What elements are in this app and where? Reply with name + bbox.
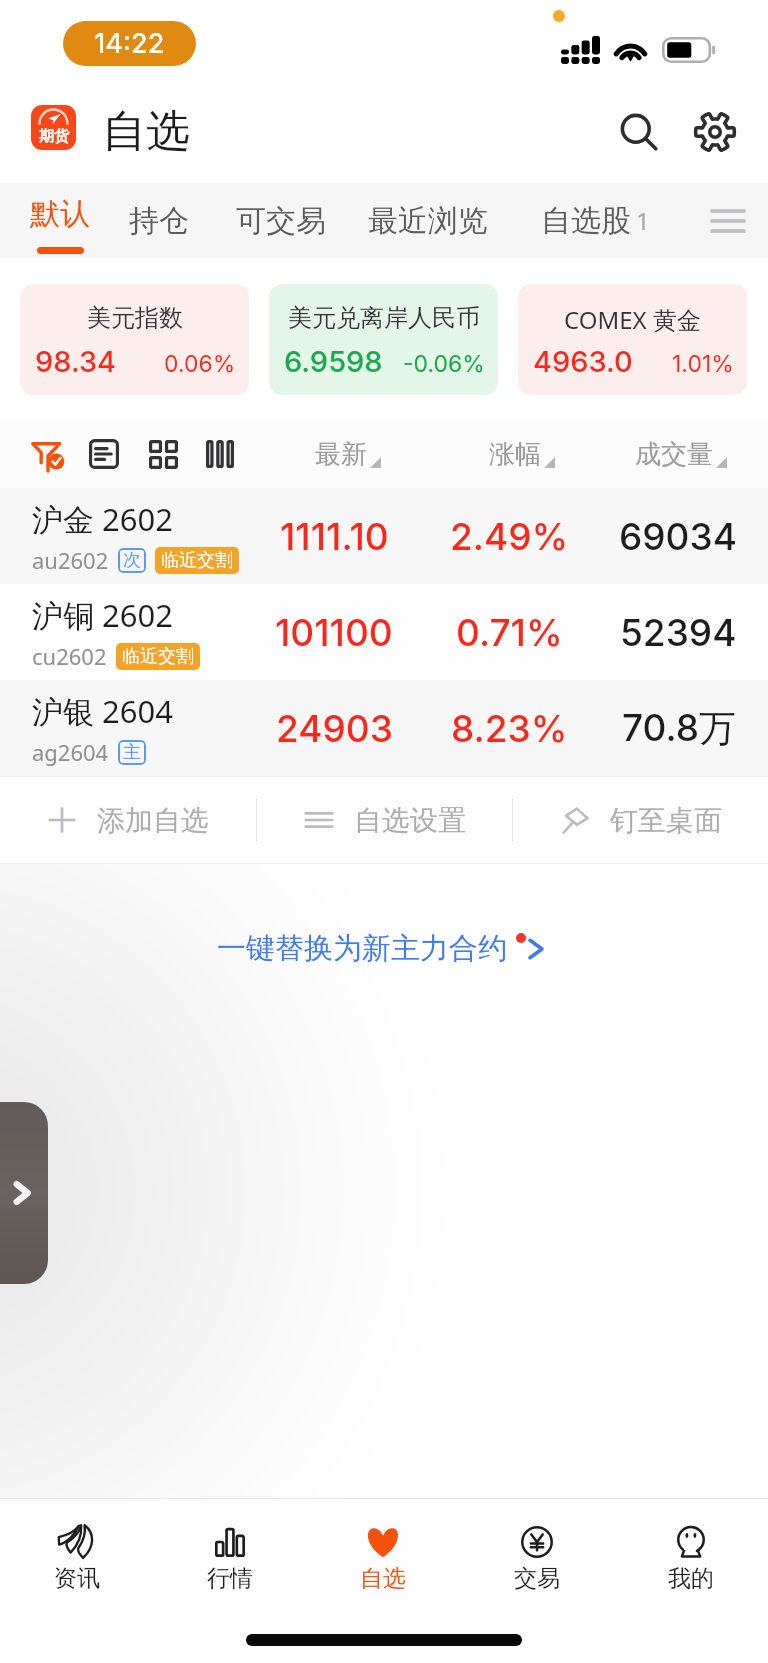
button[interactable]: 一键替换为新主力合约 <box>201 920 567 977</box>
button[interactable]: 最近浏览 <box>368 183 488 258</box>
staticText: 沪铜 2602 <box>32 594 173 636</box>
staticText: 可交易 <box>236 202 326 240</box>
staticText: au2602 <box>32 545 109 575</box>
staticText: 1.01% <box>672 350 734 378</box>
staticText: 8.23% <box>451 706 568 751</box>
button[interactable]: Open side panel <box>0 1102 48 1284</box>
button[interactable]: 沪银 2604 <box>0 680 768 776</box>
button[interactable]: 交易 <box>460 1499 614 1617</box>
staticText: 期货 <box>39 127 69 146</box>
button[interactable]: 行情 <box>153 1499 306 1617</box>
staticText: 14:22 <box>94 27 165 60</box>
staticText: 一键替换为新主力合约 <box>217 930 507 967</box>
button[interactable]: 钉至桌面 <box>513 777 768 863</box>
button[interactable]: 最新 <box>315 438 381 471</box>
staticText: 沪银 2604 <box>32 690 173 732</box>
staticText: 交易 <box>514 1564 560 1593</box>
staticText: 次 <box>123 549 141 572</box>
button[interactable]: 自选 <box>306 1499 460 1617</box>
staticText: 美元指数 <box>87 303 183 333</box>
staticText: 6.9598 <box>284 344 383 379</box>
button[interactable]: 沪铜 2602 <box>0 584 768 680</box>
staticText: -0.06% <box>403 350 485 378</box>
staticText: 24903 <box>276 706 393 751</box>
staticText: 临近交割 <box>161 549 233 572</box>
staticText: ag2604 <box>32 737 109 767</box>
button[interactable]: 我的 <box>614 1499 768 1617</box>
staticText: 1111.10 <box>280 514 389 559</box>
staticText: 主 <box>123 741 141 764</box>
staticText: 沪金 2602 <box>32 498 173 540</box>
staticText: COMEX 黄金 <box>564 303 701 336</box>
staticText: 98.34 <box>35 344 117 379</box>
staticText: 自选股 <box>541 202 631 240</box>
staticText: 0.06% <box>164 350 236 378</box>
button[interactable]: 资讯 <box>0 1499 153 1617</box>
button[interactable]: 自选设置 <box>257 777 512 863</box>
button[interactable]: 美元指数 <box>20 284 249 395</box>
button[interactable]: 沪金 2602 <box>0 488 768 584</box>
staticText: 4963.0 <box>533 344 633 379</box>
button[interactable]: 持仓 <box>129 183 189 258</box>
button[interactable]: Filter <box>21 427 75 481</box>
staticText: 0.71% <box>456 610 563 655</box>
staticText: 自选设置 <box>354 803 466 838</box>
staticText: 自选 <box>102 104 190 159</box>
staticText: 涨幅 <box>489 438 541 471</box>
button[interactable]: 可交易 <box>236 183 326 258</box>
staticText: 默认 <box>30 195 90 233</box>
staticText: 美元兑离岸人民币 <box>288 303 480 333</box>
button[interactable]: Grid view <box>139 430 188 479</box>
button[interactable]: List view <box>79 429 129 479</box>
button[interactable]: 添加自选 <box>0 777 256 863</box>
button[interactable]: Settings <box>684 101 746 163</box>
staticText: 1 <box>636 204 650 237</box>
staticText: 行情 <box>207 1564 253 1593</box>
staticText: 自选 <box>360 1564 406 1593</box>
staticText: 我的 <box>668 1564 714 1593</box>
staticText: 2.49% <box>450 514 569 559</box>
staticText: 添加自选 <box>97 803 209 838</box>
staticText: 最近浏览 <box>368 202 488 240</box>
staticText: 52394 <box>620 610 737 655</box>
button[interactable]: 涨幅 <box>489 438 555 471</box>
button[interactable]: Search <box>608 101 670 163</box>
staticText: 101100 <box>275 610 393 655</box>
staticText: 持仓 <box>129 202 189 240</box>
button[interactable]: COMEX 黄金 <box>518 284 747 395</box>
staticText: 钉至桌面 <box>610 803 722 838</box>
button[interactable]: 美元兑离岸人民币 <box>269 284 498 395</box>
button[interactable]: 默认 <box>20 183 100 258</box>
staticText: 70.8万 <box>622 705 737 752</box>
staticText: 资讯 <box>54 1564 100 1593</box>
staticText: 临近交割 <box>122 645 194 668</box>
staticText: 最新 <box>315 438 367 471</box>
staticText: 成交量 <box>635 438 713 471</box>
staticText: cu2602 <box>32 641 107 671</box>
button[interactable]: Manage tabs <box>698 191 758 251</box>
button[interactable]: 自选股 <box>541 183 650 258</box>
staticText: 69034 <box>619 514 737 559</box>
button[interactable]: 成交量 <box>635 438 727 471</box>
button[interactable]: Column view <box>196 430 244 478</box>
